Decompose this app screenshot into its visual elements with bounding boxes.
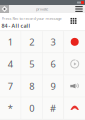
staticText: 8 [29,80,34,92]
button[interactable]: End call [64,97,85,119]
button[interactable]: Play [64,53,85,75]
button[interactable]: 1 [0,31,21,53]
button[interactable]: 9 [43,75,63,97]
button[interactable]: 2 [21,31,42,53]
staticText: 4 [8,58,13,70]
button[interactable]: 0 [21,97,42,119]
staticText: private [36,6,48,12]
button[interactable]: Dialpad [70,14,77,25]
button[interactable]: 7 [0,75,21,97]
staticText: 5 [29,58,34,70]
button[interactable]: 3 [43,31,63,53]
staticText: 1 [8,36,13,48]
button[interactable]: # [43,97,63,119]
staticText: Press Rec to record your message [1,16,61,21]
button[interactable]: Record [64,31,85,53]
staticText: * [8,102,13,114]
button[interactable]: Speaker [64,75,85,97]
button[interactable]: App [0,5,9,13]
staticText: # [50,102,56,114]
staticText: 3 [51,36,56,48]
staticText: 0 [29,102,34,114]
button[interactable]: Menu [75,5,83,13]
staticText: 2 [29,36,34,48]
staticText: 84 - All call [1,22,30,29]
button[interactable]: 8 [21,75,42,97]
button[interactable]: 6 [43,53,63,75]
button[interactable]: 4 [0,53,21,75]
staticText: 6 [51,58,56,70]
button[interactable]: * [0,97,21,119]
staticText: 9 [51,80,56,92]
button[interactable]: 5 [21,53,42,75]
staticText: 7 [8,80,13,92]
